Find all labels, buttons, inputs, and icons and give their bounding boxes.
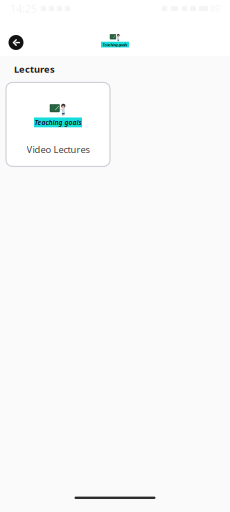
staticText: Teaching goals	[34, 118, 81, 127]
staticText: 14:25	[10, 1, 37, 16]
button[interactable]: Back	[1, 27, 31, 57]
button[interactable]: Teaching goals	[6, 82, 110, 166]
staticText: 89	[210, 2, 220, 15]
staticText: Lectures	[14, 63, 55, 75]
staticText: Video Lectures	[26, 143, 89, 156]
staticText: Teaching goals	[102, 42, 127, 47]
